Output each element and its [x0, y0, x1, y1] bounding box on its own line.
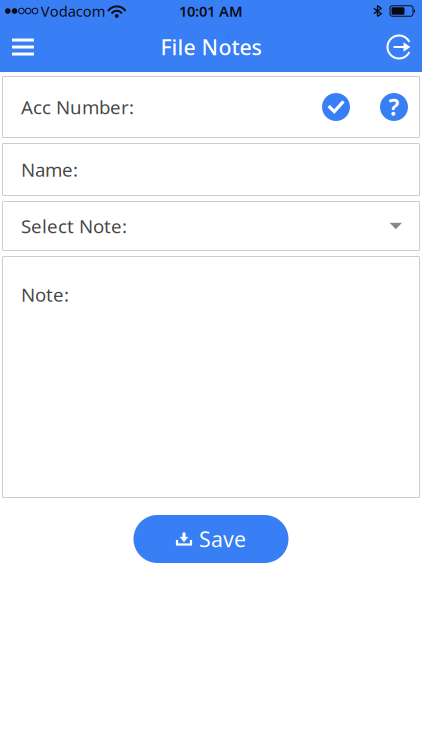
staticText: Acc Number: — [21, 95, 134, 119]
button[interactable]: Save — [133, 515, 288, 563]
button[interactable]: Confirm account number — [322, 93, 350, 121]
staticText: Save — [199, 525, 246, 553]
staticText: Vodacom — [41, 1, 106, 21]
button[interactable]: Log Out — [387, 25, 422, 69]
staticText: Select Note: — [21, 214, 127, 238]
staticText: File Notes — [160, 33, 261, 61]
staticText: Name: — [21, 157, 78, 182]
button[interactable]: Menu — [0, 28, 34, 65]
staticText: ? — [388, 92, 399, 122]
staticText: Note: — [21, 282, 69, 307]
staticText: 10:01 AM — [179, 1, 243, 21]
button[interactable]: Help — [380, 93, 408, 121]
button[interactable]: Select Note: — [0, 201, 422, 251]
